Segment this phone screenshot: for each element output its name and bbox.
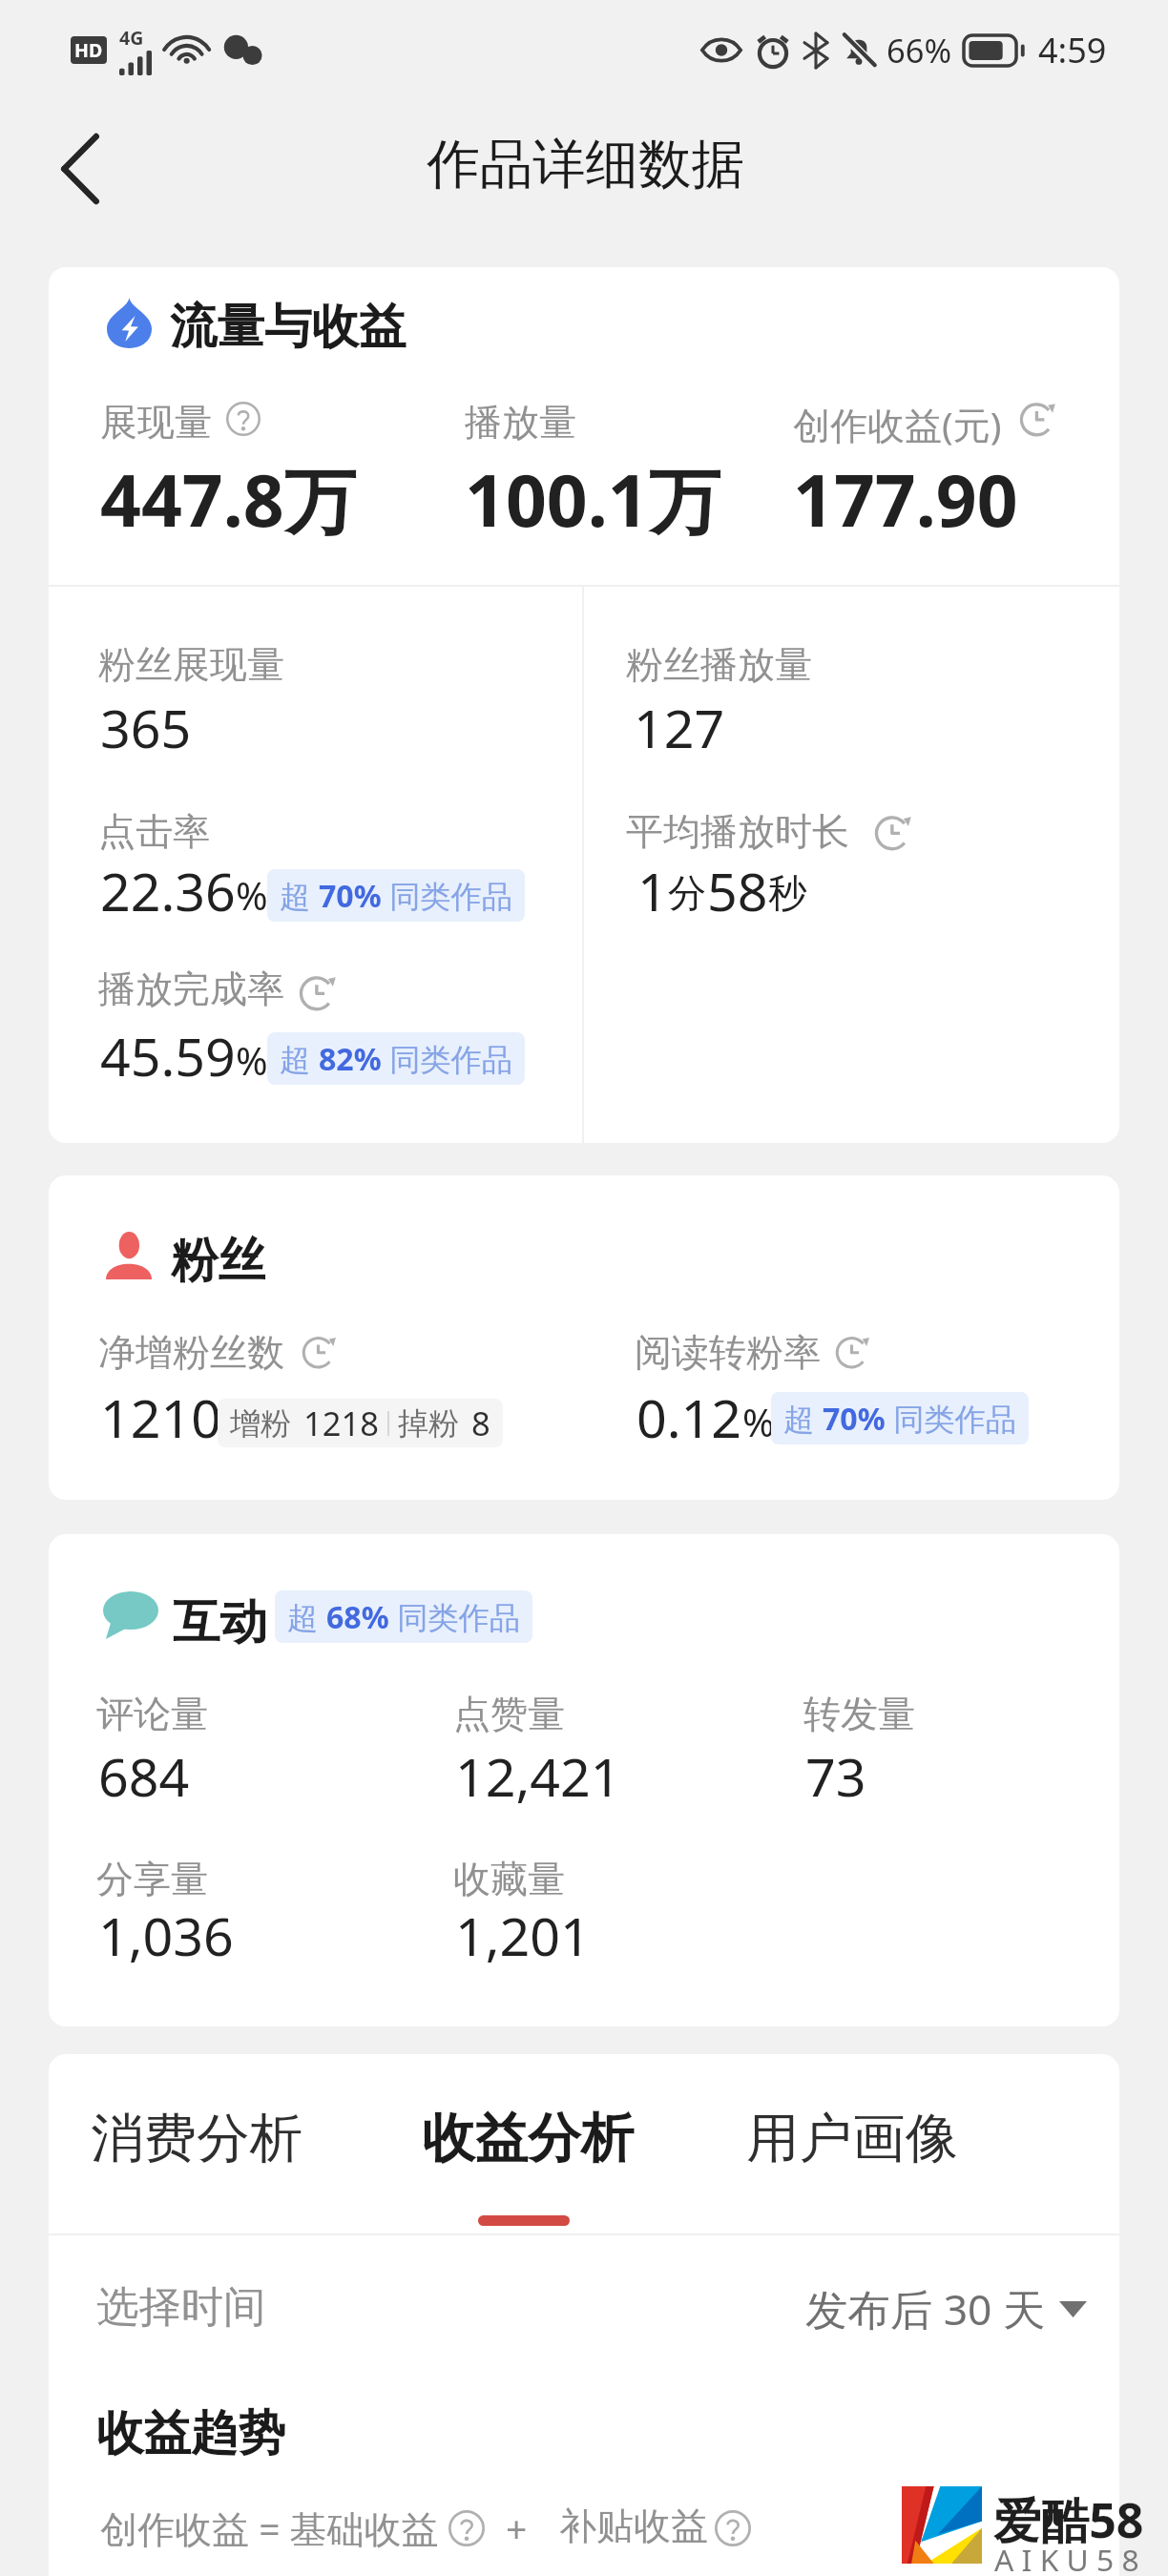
staticText: 作品详细数据 xyxy=(427,132,744,198)
staticText: 447.8万 xyxy=(100,450,356,548)
button[interactable]: 消费分析 xyxy=(71,2078,322,2200)
button[interactable]: 收益分析 xyxy=(407,2078,647,2200)
staticText: 100.1万 xyxy=(465,450,720,548)
staticText: 播放量 xyxy=(465,399,576,446)
staticText: 66% xyxy=(886,28,952,73)
staticText: 127 xyxy=(634,692,725,764)
staticText: 8 xyxy=(471,1401,490,1445)
staticText: 展现量 xyxy=(100,399,212,446)
staticText: 粉丝 xyxy=(171,1231,265,1290)
staticText: 播放完成率 xyxy=(98,966,284,1012)
staticText: 转发量 xyxy=(803,1691,915,1737)
staticText: 70% xyxy=(319,875,382,917)
staticText: 同类作品 xyxy=(382,1038,512,1080)
staticText: 分 xyxy=(668,869,707,918)
staticText: 掉粉 xyxy=(398,1404,460,1443)
staticText: 365 xyxy=(100,692,192,764)
staticText: 超 xyxy=(287,1596,326,1638)
staticText: 阅读转粉率 xyxy=(635,1329,821,1376)
staticText: 同类作品 xyxy=(382,875,512,917)
staticText: 互动 xyxy=(173,1592,267,1652)
staticText: 超 xyxy=(280,875,319,917)
staticText: 177.90 xyxy=(793,450,1018,548)
staticText: 4:59 xyxy=(1038,27,1107,73)
staticText: 同类作品 xyxy=(886,1398,1016,1440)
staticText: 增粉 xyxy=(230,1404,292,1443)
staticText: 45.59 xyxy=(100,1020,236,1092)
staticText: 1 xyxy=(637,855,668,927)
button[interactable]: 用户画像 xyxy=(732,2078,971,2200)
staticText: 粉丝展现量 xyxy=(98,641,284,688)
staticText: 超 xyxy=(280,1038,319,1080)
staticText: + xyxy=(506,2503,528,2553)
staticText: 58 xyxy=(707,855,768,927)
staticText: 消费分析 xyxy=(91,2106,302,2172)
staticText: 用户画像 xyxy=(746,2106,958,2172)
staticText: 点赞量 xyxy=(453,1691,565,1737)
staticText: 分享量 xyxy=(96,1856,208,1902)
staticText: % xyxy=(236,1034,268,1087)
staticText: 收藏量 xyxy=(453,1856,565,1902)
staticText: 4G xyxy=(119,25,144,51)
staticText: 1210 xyxy=(100,1381,221,1454)
staticText: 爱酷58 xyxy=(993,2486,1144,2551)
staticText: 评论量 xyxy=(96,1691,208,1737)
staticText: 创作收益 = 基础收益 xyxy=(100,2503,439,2553)
staticText: 70% xyxy=(823,1398,886,1440)
staticText: 73 xyxy=(805,1740,866,1813)
staticText: 粉丝播放量 xyxy=(626,641,812,688)
staticText: HD xyxy=(74,37,103,63)
staticText: 1,201 xyxy=(455,1900,591,1972)
staticText: 点击率 xyxy=(98,808,210,855)
staticText: 平均播放时长 xyxy=(626,808,849,855)
staticText: % xyxy=(742,1396,775,1448)
staticText: 1,036 xyxy=(98,1900,234,1972)
staticText: 收益分析 xyxy=(422,2106,634,2172)
staticText: 82% xyxy=(319,1038,382,1080)
staticText: 秒 xyxy=(768,869,807,918)
staticText: 同类作品 xyxy=(389,1596,520,1638)
staticText: 0.12 xyxy=(636,1381,742,1454)
staticText: % xyxy=(236,869,268,922)
staticText: 创作收益(元) xyxy=(793,399,1002,449)
staticText: 收益趋势 xyxy=(96,2403,285,2462)
staticText: 超 xyxy=(783,1398,823,1440)
staticText: 684 xyxy=(98,1740,190,1813)
button[interactable]: 发布后 30 天 xyxy=(805,2280,1087,2338)
button[interactable]: Back xyxy=(23,112,137,226)
staticText: 选择时间 xyxy=(96,2280,266,2334)
staticText: A I K U 5 8 xyxy=(994,2539,1139,2576)
staticText: 12,421 xyxy=(455,1740,621,1813)
staticText: 流量与收益 xyxy=(170,297,407,356)
staticText: 22.36 xyxy=(100,855,236,927)
staticText: 净增粉丝数 xyxy=(98,1329,284,1376)
staticText: 补贴收益 xyxy=(559,2503,708,2549)
staticText: 68% xyxy=(326,1596,389,1638)
staticText: 1218 xyxy=(303,1401,379,1445)
staticText: 发布后 30 天 xyxy=(805,2280,1046,2338)
